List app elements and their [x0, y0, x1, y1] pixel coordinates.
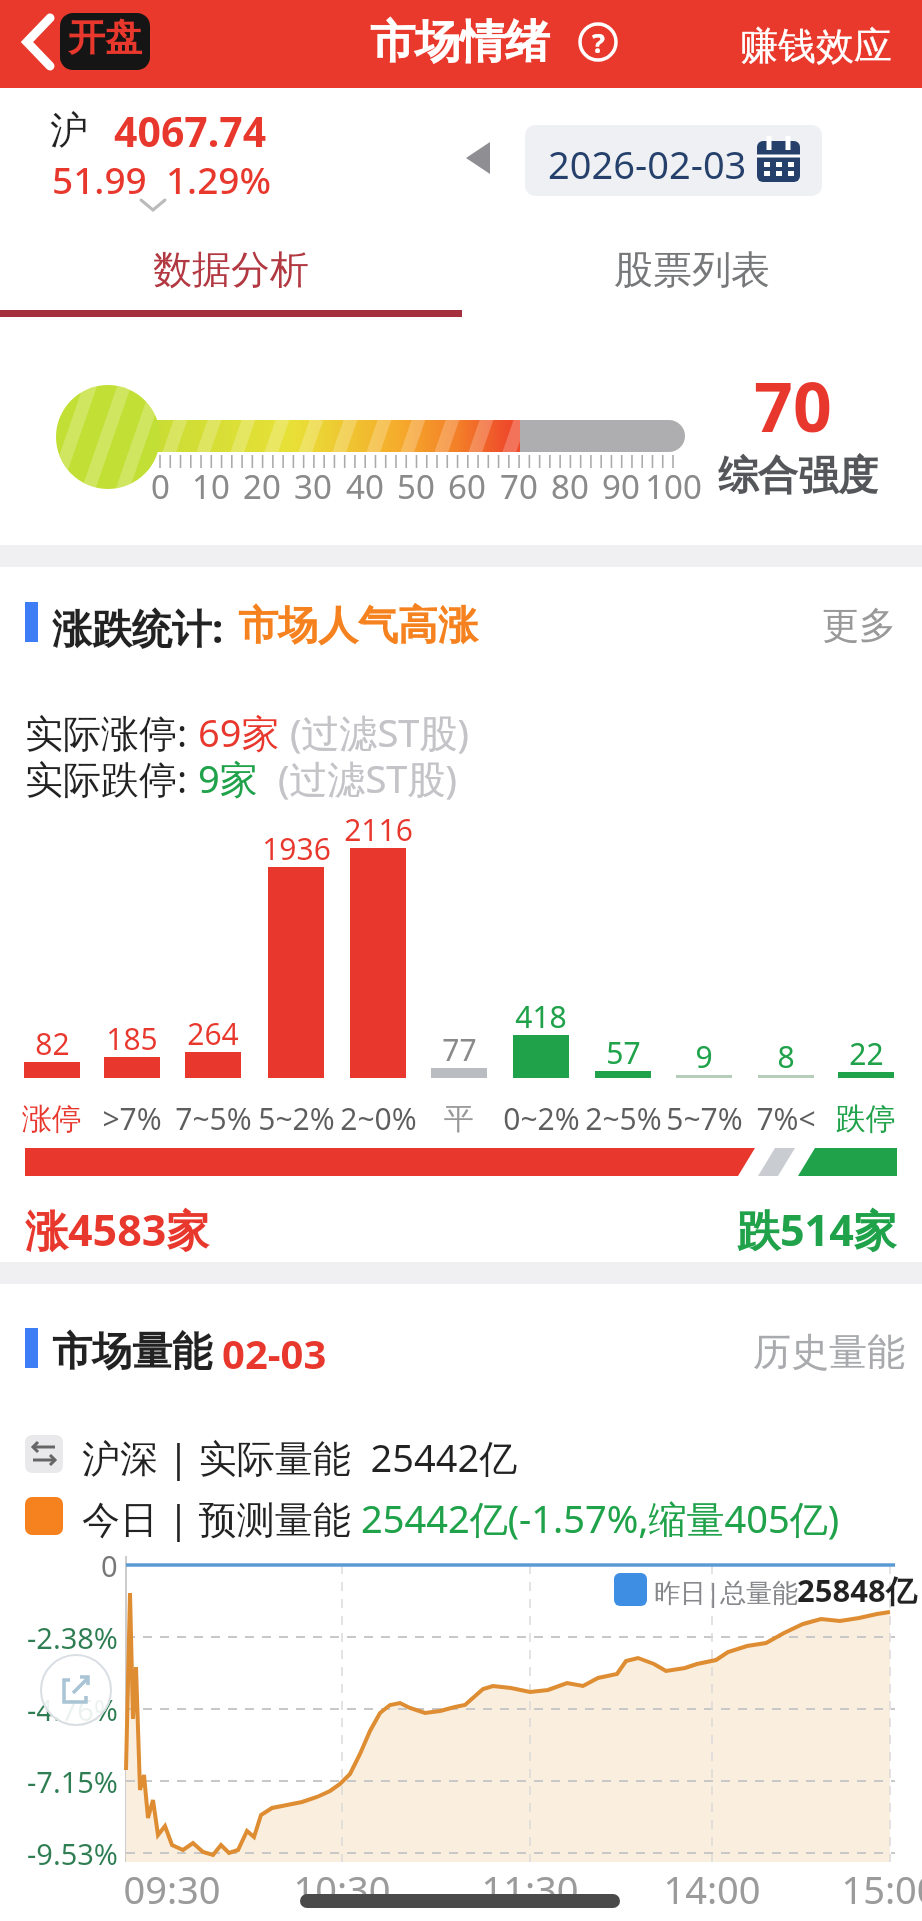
- staticText: -4.76%: [27, 1690, 118, 1729]
- staticText: 77: [442, 1029, 477, 1070]
- staticText: 02-03: [222, 1326, 327, 1380]
- staticText: 14:00: [663, 1863, 761, 1915]
- staticText: 10: [192, 464, 230, 509]
- staticText: 25848亿: [797, 1569, 917, 1611]
- staticText: 80: [551, 464, 589, 509]
- staticText: 90: [602, 464, 640, 509]
- staticText: 70: [500, 464, 538, 509]
- staticText: -2.38%: [27, 1618, 118, 1657]
- staticText: 平: [444, 1100, 474, 1138]
- staticText: 市场量能: [52, 1326, 212, 1376]
- button[interactable]: 数据分析: [0, 228, 461, 310]
- staticText: -7.15%: [27, 1762, 118, 1801]
- staticText: 09:30: [123, 1863, 221, 1915]
- staticText: 更多: [822, 602, 896, 649]
- staticText: 9: [695, 1036, 713, 1077]
- staticText: 15:00: [841, 1863, 922, 1915]
- staticText: 0: [101, 1546, 118, 1585]
- staticText: 185: [106, 1018, 158, 1059]
- staticText: 30: [294, 464, 332, 509]
- staticText: 市场人气高涨: [238, 600, 478, 650]
- staticText: 跌停: [836, 1100, 896, 1138]
- staticText: 5~7%: [666, 1098, 743, 1139]
- staticText: 赚钱效应: [740, 22, 892, 70]
- button[interactable]: 股票列表: [461, 228, 922, 310]
- staticText: 40: [346, 464, 384, 509]
- staticText: 11:30: [481, 1863, 579, 1915]
- staticText: 涨跌统计:: [52, 600, 224, 655]
- staticText: 4067.74: [114, 103, 267, 159]
- button[interactable]: 市场情绪: [350, 9, 570, 76]
- staticText: 市场情绪: [370, 14, 550, 71]
- staticText: 0: [151, 464, 170, 509]
- staticText: 沪: [50, 106, 88, 154]
- staticText: -9.53%: [27, 1834, 118, 1873]
- staticText: 1936: [262, 828, 331, 869]
- staticText: 60: [448, 464, 486, 509]
- staticText: (过滤ST股): [278, 752, 457, 804]
- staticText: 实际涨停:: [25, 706, 198, 758]
- staticText: 50: [397, 464, 435, 509]
- staticText: 418: [515, 996, 567, 1037]
- button[interactable]: [525, 125, 822, 196]
- button[interactable]: 赚钱效应: [740, 22, 892, 70]
- staticText: 10:30: [293, 1863, 391, 1915]
- staticText: 82: [35, 1023, 70, 1064]
- staticText: 264: [187, 1013, 239, 1054]
- staticText: 实际跌停:: [25, 752, 198, 804]
- staticText: 涨4583家: [25, 1200, 210, 1259]
- staticText: 跌514家: [737, 1200, 897, 1256]
- button[interactable]: [40, 1654, 112, 1726]
- staticText: 股票列表: [614, 245, 770, 294]
- staticText: 综合强度: [718, 450, 878, 500]
- staticText: (过滤ST股): [290, 706, 469, 758]
- button[interactable]: ?: [578, 22, 618, 62]
- staticText: 100: [645, 464, 702, 509]
- staticText: 20: [243, 464, 281, 509]
- staticText: 7%<: [756, 1098, 816, 1139]
- staticText: 22: [849, 1033, 884, 1074]
- staticText: 历史量能: [753, 1328, 905, 1376]
- button[interactable]: [18, 8, 154, 76]
- staticText: 0~2%: [503, 1098, 580, 1139]
- staticText: >7%: [102, 1098, 162, 1139]
- staticText: 昨日|总量能: [654, 1574, 799, 1610]
- staticText: 57: [606, 1032, 641, 1073]
- staticText: 2~5%: [585, 1098, 662, 1139]
- staticText: 5~2%: [258, 1098, 335, 1139]
- staticText: 2116: [344, 809, 413, 850]
- staticText: ?: [592, 24, 605, 61]
- staticText: 25442亿(-1.57%,缩量405亿): [361, 1492, 840, 1544]
- staticText: 7~5%: [175, 1098, 252, 1139]
- staticText: 沪深 | 实际量能 25442亿: [82, 1431, 518, 1483]
- staticText: 69家: [198, 706, 290, 758]
- staticText: 51.99 1.29%: [52, 154, 272, 204]
- staticText: 9家: [198, 752, 278, 804]
- staticText: 今日 | 预测量能: [82, 1492, 361, 1544]
- staticText: 8: [777, 1036, 795, 1077]
- staticText: 涨停: [22, 1100, 82, 1138]
- staticText: 2~0%: [340, 1098, 417, 1139]
- button[interactable]: 历史量能: [753, 1328, 905, 1376]
- staticText: 2026-02-03: [548, 138, 747, 190]
- staticText: 70: [754, 359, 832, 452]
- staticText: 开盘: [68, 14, 142, 61]
- button[interactable]: 更多: [822, 602, 896, 649]
- staticText: 数据分析: [153, 245, 309, 294]
